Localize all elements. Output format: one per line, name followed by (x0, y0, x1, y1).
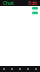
staticText: Edit (28, 0, 37, 7)
staticText: Chat (3, 0, 14, 7)
